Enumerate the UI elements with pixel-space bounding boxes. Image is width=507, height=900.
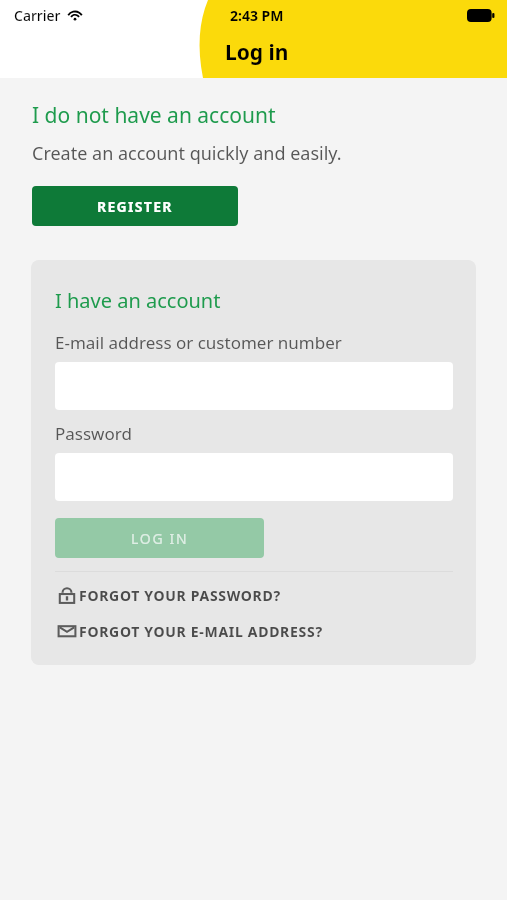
button[interactable]: Forgot your e-mail address <box>55 619 453 643</box>
staticText: Carrier <box>14 6 61 25</box>
staticText: 2:43 PM <box>230 6 284 25</box>
staticText: I have an account <box>55 287 221 314</box>
staticText: Create an account quickly and easily. <box>32 141 342 166</box>
other: Forgot your e-mail address <box>55 619 79 643</box>
other: Forgot your password <box>55 583 79 607</box>
staticText: FORGOT YOUR PASSWORD? <box>79 586 281 605</box>
button[interactable]: LOG IN <box>55 518 264 558</box>
button[interactable]: Forgot your password <box>55 583 453 607</box>
staticText: Log in <box>225 38 289 67</box>
staticText: FORGOT YOUR E-MAIL ADDRESS? <box>79 622 323 641</box>
button[interactable]: REGISTER <box>32 186 238 226</box>
staticText: Password <box>55 422 132 445</box>
staticText: I do not have an account <box>32 101 276 130</box>
staticText: E-mail address or customer number <box>55 331 342 354</box>
staticText: LOG IN <box>131 529 189 548</box>
staticText: REGISTER <box>97 197 173 216</box>
